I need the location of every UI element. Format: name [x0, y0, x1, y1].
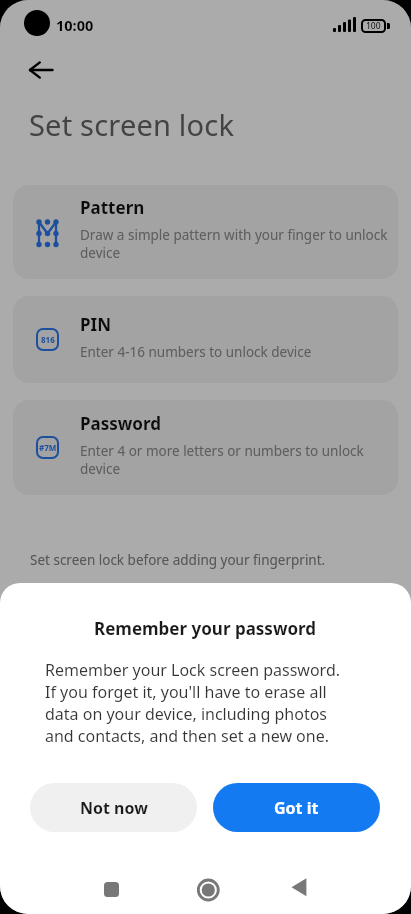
button[interactable] [99, 877, 124, 902]
staticText: Got it [274, 797, 319, 819]
staticText: Enter 4 or more letters or numbers to un… [80, 442, 364, 478]
staticText: Not now [80, 797, 148, 819]
button[interactable] [289, 877, 309, 897]
button[interactable]: 816 [13, 296, 398, 383]
staticText: #7M [39, 442, 57, 453]
staticText: Pattern [80, 196, 145, 219]
button[interactable]: Pattern [13, 185, 398, 279]
staticText: 100 [366, 20, 381, 32]
staticText: 816 [41, 334, 55, 345]
staticText: PIN [80, 313, 111, 336]
staticText: Set screen lock [29, 105, 235, 144]
staticText: Set screen lock before adding your finge… [30, 551, 326, 569]
staticText: Draw a simple pattern with your finger t… [80, 226, 388, 262]
staticText: Enter 4-16 numbers to unlock device [80, 343, 312, 361]
staticText: Remember your Lock screen password. If y… [45, 659, 341, 747]
button[interactable] [195, 877, 220, 902]
button[interactable]: Got it [213, 783, 380, 832]
button[interactable]: #7M [13, 400, 398, 495]
staticText: Password [80, 412, 161, 435]
button[interactable] [22, 52, 60, 88]
staticText: Remember your password [94, 617, 317, 640]
staticText: 10:00 [56, 15, 94, 35]
button[interactable]: Not now [30, 783, 197, 832]
